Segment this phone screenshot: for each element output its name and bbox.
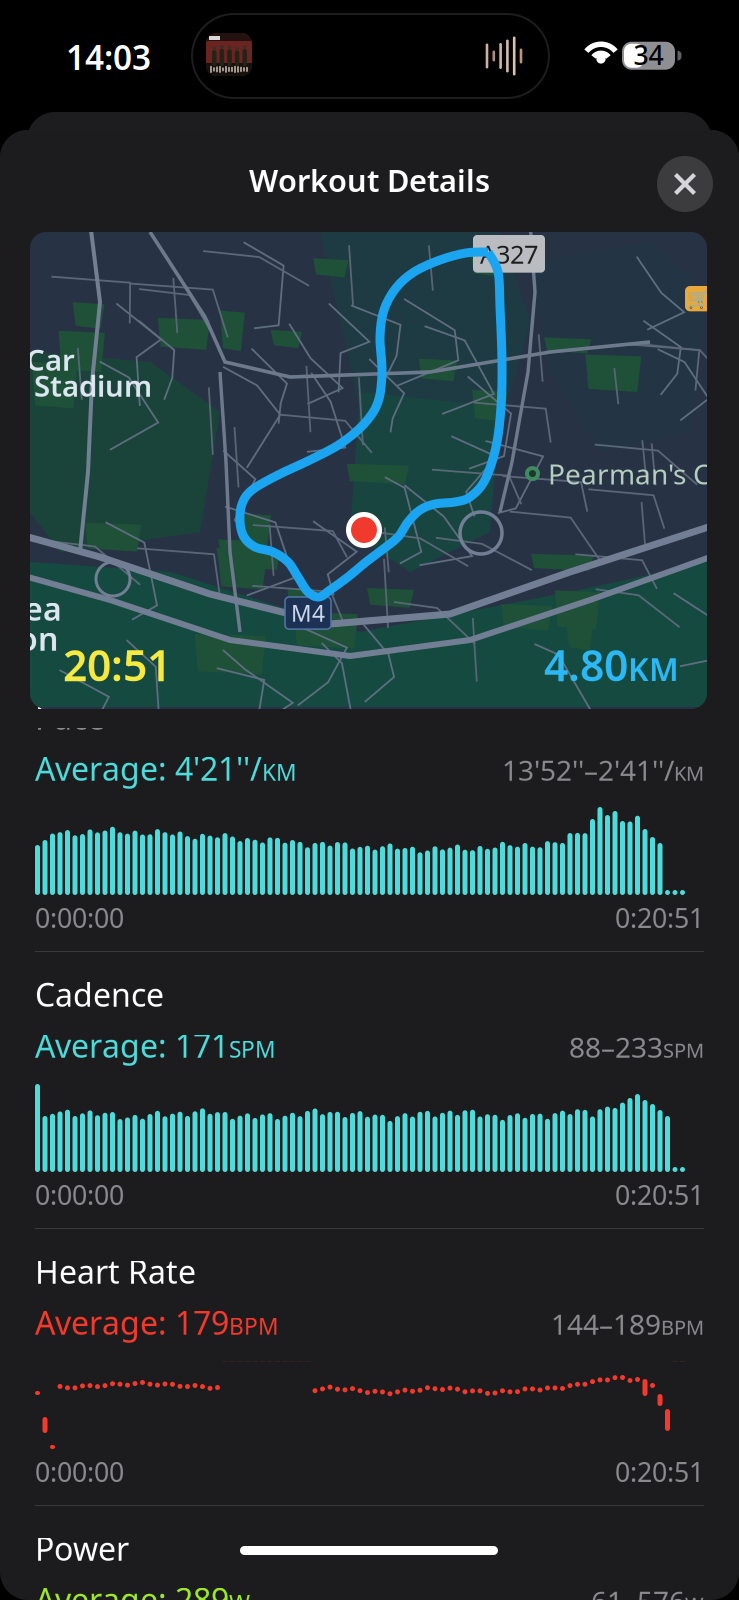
staticText: 144–189 [551, 1305, 661, 1342]
staticText: Average: 179 [35, 1301, 229, 1343]
staticText: KM [628, 648, 679, 690]
staticText: Power [35, 1527, 129, 1569]
staticText: BPM [229, 1311, 279, 1341]
staticText: 14:03 [66, 35, 151, 79]
staticText: KM [262, 757, 297, 787]
staticText: 🛒 [687, 288, 710, 309]
staticText: A327 [480, 237, 538, 271]
staticText: 0:00:00 [35, 1177, 124, 1212]
staticText: Pace [35, 696, 105, 738]
staticText: g Stadium [8, 366, 152, 405]
staticText: 0:00:00 [35, 1454, 124, 1489]
staticText: 34 [633, 37, 663, 72]
staticText: 0:20:51 [615, 900, 704, 935]
staticText: 0:00:00 [35, 900, 124, 935]
staticText: 0:20:51 [615, 1177, 704, 1212]
staticText: W [685, 1591, 704, 1600]
staticText: KM [674, 760, 704, 786]
staticText: Pearman's Copse [548, 455, 739, 492]
button[interactable]: Close [657, 156, 713, 212]
staticText: W [229, 1588, 250, 1600]
staticText: Average: 289 [35, 1578, 229, 1600]
staticText: SPM [663, 1037, 704, 1063]
staticText: Cadence [35, 973, 164, 1015]
staticText: on [18, 617, 58, 659]
staticText: BPM [661, 1314, 704, 1340]
staticText: ea [24, 587, 62, 629]
staticText: SPM [229, 1034, 276, 1064]
staticText: Heart Rate [35, 1250, 196, 1292]
staticText: Workout Details [249, 160, 490, 200]
staticText: Average: 4'21''/ [35, 747, 262, 789]
staticText: Car [26, 340, 75, 379]
staticText: Average: 171 [35, 1024, 229, 1066]
staticText: 61–576 [591, 1582, 685, 1600]
staticText: M4 [291, 598, 325, 628]
staticText: 88–233 [569, 1028, 663, 1065]
staticText: 4.80 [544, 636, 628, 693]
staticText: 13'52''–2'41''/ [502, 751, 674, 788]
staticText: 20:51 [63, 636, 171, 693]
staticText: 0:20:51 [615, 1454, 704, 1489]
